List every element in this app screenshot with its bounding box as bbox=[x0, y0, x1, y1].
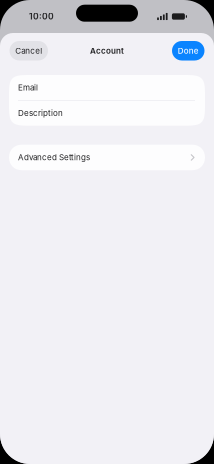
staticText: Done bbox=[178, 46, 199, 56]
staticText: 10:00 bbox=[29, 11, 54, 22]
button[interactable]: Advanced Settings bbox=[0, 145, 214, 170]
button[interactable]: Cancel bbox=[9, 41, 48, 60]
staticText: Description bbox=[18, 108, 63, 118]
staticText: Cancel bbox=[15, 46, 42, 56]
staticText: Account bbox=[90, 46, 124, 56]
button[interactable]: Email bbox=[9, 75, 205, 100]
staticText: Advanced Settings bbox=[18, 153, 90, 162]
staticText: Email bbox=[18, 83, 38, 92]
button[interactable]: Description bbox=[9, 101, 205, 126]
button[interactable]: Done bbox=[172, 41, 204, 60]
